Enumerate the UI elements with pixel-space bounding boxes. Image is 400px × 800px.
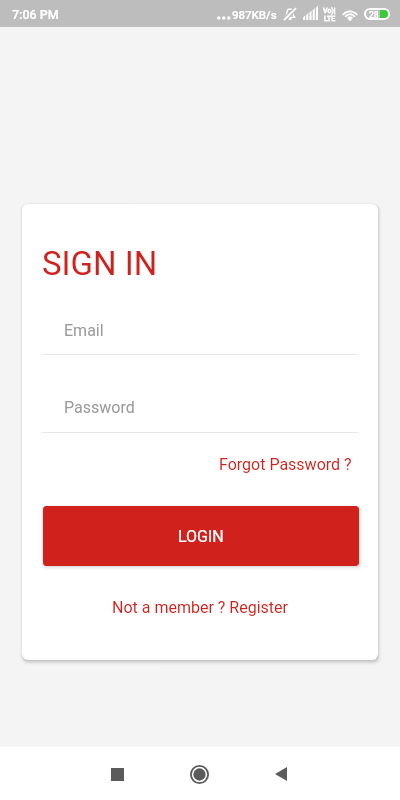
- button[interactable]: Password: [42, 387, 358, 433]
- staticText: 987KB/s: [232, 8, 277, 21]
- staticText: Email: [64, 321, 104, 340]
- button[interactable]: Email: [42, 310, 358, 355]
- button[interactable]: Recent apps: [95, 752, 139, 796]
- staticText: 28: [369, 10, 379, 18]
- staticText: Password: [64, 398, 135, 417]
- button[interactable]: Home: [177, 752, 221, 796]
- staticText: 7:06 PM: [12, 7, 59, 22]
- button[interactable]: Forgot Password ?: [216, 455, 352, 474]
- button[interactable]: LOGIN: [43, 506, 359, 566]
- staticText: Forgot Password ?: [219, 455, 352, 474]
- staticText: SIGN IN: [42, 244, 158, 283]
- button[interactable]: Not a member ? Register: [106, 594, 294, 621]
- staticText: LTE: [324, 15, 336, 23]
- button[interactable]: Back: [259, 752, 303, 796]
- staticText: LOGIN: [178, 527, 224, 546]
- staticText: Vo)|: [323, 7, 336, 15]
